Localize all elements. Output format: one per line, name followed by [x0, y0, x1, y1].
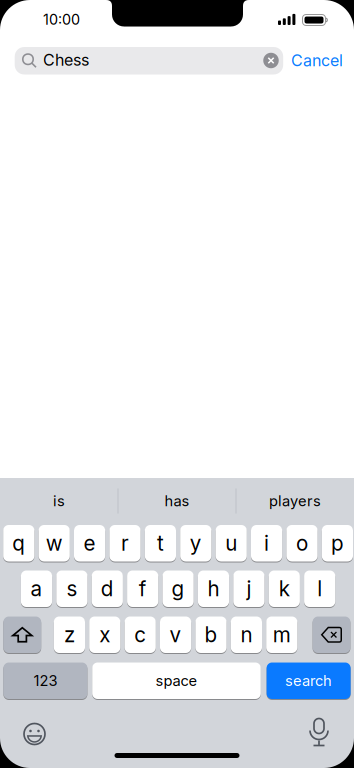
staticText: t [157, 531, 164, 555]
staticText: g [172, 577, 185, 601]
staticText: d [101, 577, 114, 601]
staticText: k [279, 577, 290, 601]
button[interactable]: f [127, 570, 158, 607]
staticText: search [285, 672, 332, 689]
button[interactable]: k [269, 570, 300, 607]
staticText: l [317, 577, 322, 601]
button[interactable]: b [195, 616, 227, 653]
staticText: b [204, 623, 217, 647]
button[interactable]: c [125, 616, 156, 653]
staticText: w [46, 531, 63, 555]
button[interactable]: n [231, 616, 262, 653]
button[interactable]: search [267, 662, 351, 699]
staticText: 10:00 [43, 11, 80, 28]
staticText: e [84, 531, 96, 555]
button[interactable]: o [286, 525, 318, 561]
staticText: y [190, 531, 202, 555]
staticText: i [264, 531, 269, 555]
staticText: o [296, 531, 308, 555]
button[interactable]: players [240, 481, 350, 521]
button[interactable]: has [122, 481, 232, 521]
button[interactable]: p [322, 525, 353, 561]
button[interactable]: w [39, 525, 70, 561]
staticText: z [64, 623, 75, 647]
staticText: x [99, 623, 110, 647]
button[interactable]: j [233, 570, 264, 607]
button[interactable]: Emoji [12, 712, 56, 756]
staticText: s [66, 577, 77, 601]
button[interactable]: m [266, 616, 297, 653]
staticText: j [246, 577, 251, 601]
button[interactable]: s [56, 570, 87, 607]
button[interactable]: e [74, 525, 105, 561]
staticText: a [30, 577, 42, 601]
staticText: q [12, 531, 25, 555]
staticText: players [269, 492, 321, 510]
button[interactable]: v [160, 616, 191, 653]
button[interactable]: Shift [3, 616, 41, 653]
button[interactable]: h [198, 570, 229, 607]
button[interactable]: is [4, 481, 114, 521]
staticText: h [207, 577, 219, 601]
staticText: is [53, 492, 65, 510]
staticText: has [164, 492, 189, 510]
staticText: p [331, 531, 344, 555]
button[interactable]: 123 [3, 662, 87, 699]
button[interactable]: t [145, 525, 176, 561]
staticText: n [240, 623, 252, 647]
button[interactable]: a [21, 570, 52, 607]
staticText: Chess [43, 50, 89, 69]
staticText: u [225, 531, 237, 555]
staticText: v [170, 623, 182, 647]
button[interactable]: Search field [15, 47, 283, 74]
button[interactable]: i [251, 525, 282, 561]
button[interactable]: d [92, 570, 123, 607]
staticText: r [121, 531, 129, 555]
button[interactable]: u [216, 525, 247, 561]
staticText: Cancel [291, 51, 343, 70]
staticText: m [273, 623, 291, 647]
button[interactable]: l [304, 570, 335, 607]
staticText: space [155, 672, 197, 689]
staticText: f [139, 577, 147, 601]
button[interactable]: g [162, 570, 194, 607]
button[interactable]: x [89, 616, 120, 653]
staticText: 123 [33, 672, 57, 689]
button[interactable]: Cancel [286, 43, 348, 77]
button[interactable]: z [54, 616, 85, 653]
button[interactable]: Clear text [256, 45, 286, 75]
button[interactable]: Delete [313, 616, 350, 653]
staticText: c [134, 623, 146, 647]
button[interactable]: r [109, 525, 141, 561]
button[interactable]: space [92, 662, 261, 699]
button[interactable]: q [3, 525, 34, 561]
button[interactable]: y [180, 525, 211, 561]
button[interactable]: Dictation [297, 711, 341, 755]
